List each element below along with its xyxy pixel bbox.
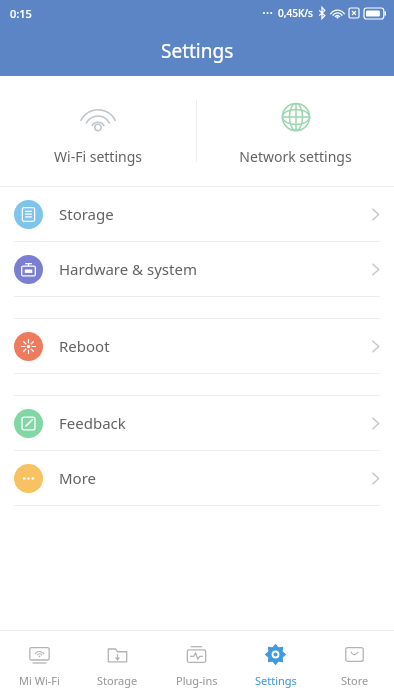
- button[interactable]: More: [0, 451, 394, 505]
- button[interactable]: Settings: [236, 631, 315, 700]
- button[interactable]: Hardware & system: [0, 242, 394, 296]
- staticText: Feedback: [59, 413, 126, 433]
- button[interactable]: Store: [315, 631, 394, 700]
- staticText: 0,45K/s: [278, 6, 313, 20]
- staticText: Reboot: [59, 336, 110, 356]
- staticText: Storage: [97, 673, 138, 688]
- button[interactable]: Network settings: [197, 76, 394, 186]
- staticText: Storage: [59, 204, 114, 224]
- staticText: More: [59, 468, 97, 488]
- staticText: Store: [341, 673, 369, 688]
- button[interactable]: Wi-Fi settings: [0, 76, 196, 186]
- button[interactable]: Plug-ins: [157, 631, 236, 700]
- button[interactable]: Storage: [78, 631, 157, 700]
- staticText: 0:15: [10, 6, 32, 21]
- button[interactable]: Feedback: [0, 396, 394, 450]
- button[interactable]: Storage: [0, 187, 394, 241]
- staticText: Mi Wi-Fi: [19, 673, 60, 688]
- staticText: Network settings: [239, 147, 352, 166]
- button[interactable]: Mi Wi-Fi: [0, 631, 78, 700]
- staticText: Plug-ins: [176, 673, 218, 688]
- staticText: Settings: [161, 38, 234, 64]
- staticText: Settings: [255, 673, 297, 688]
- staticText: Wi-Fi settings: [54, 147, 142, 166]
- button[interactable]: Reboot: [0, 319, 394, 373]
- staticText: Hardware & system: [59, 259, 197, 279]
